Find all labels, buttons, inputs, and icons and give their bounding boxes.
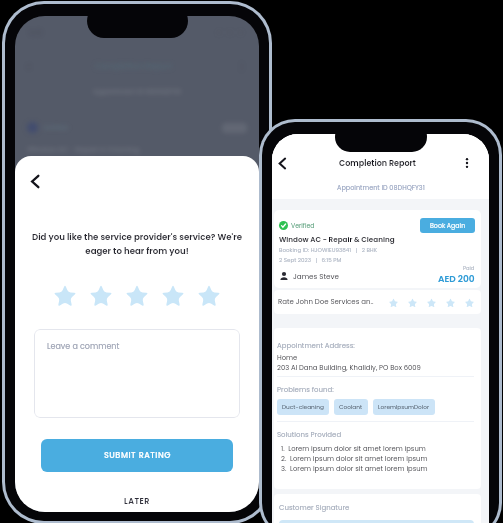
staticText: Appointment Address: — [277, 341, 355, 351]
staticText: 3. Lorem ipsum dolor sit amet lorem ipsu… — [281, 464, 428, 474]
button[interactable]: Rate 4 stars — [155, 278, 191, 314]
staticText: Completion Report — [298, 158, 457, 169]
button[interactable]: Back — [19, 165, 51, 197]
button[interactable]: Leave a comment — [34, 329, 240, 418]
button[interactable]: Back — [272, 153, 292, 173]
button[interactable]: SUBMIT RATING — [41, 439, 233, 472]
staticText: LATER — [124, 496, 150, 507]
button[interactable]: Rate 2 stars — [83, 278, 119, 314]
staticText: Booking ID: HJOWIEU93841 | 2 BHK — [279, 246, 378, 254]
staticText: Customer Signature — [279, 503, 350, 513]
staticText: Book Again — [430, 221, 466, 230]
staticText: SUBMIT RATING — [104, 450, 171, 461]
button[interactable]: Rate 3 stars — [119, 278, 155, 314]
button[interactable]: LATER — [15, 487, 259, 512]
staticText: Verified — [291, 221, 315, 230]
staticText: Window AC - Repair & Cleaning — [279, 234, 395, 244]
staticText: Paid — [463, 265, 475, 272]
staticText: Coolant — [339, 403, 363, 411]
staticText: Home — [277, 353, 298, 363]
button[interactable]: Book Again — [420, 218, 475, 233]
staticText: Appointment ID 08DHQFY31 — [337, 183, 425, 192]
staticText: 2. Lorem ipsum dolor sit amet lorem ipsu… — [281, 454, 428, 464]
staticText: LoremIpsumDolor — [378, 403, 430, 411]
staticText: James Steve — [293, 271, 339, 281]
staticText: Rate John Doe Services an.. — [278, 297, 374, 307]
staticText: 1. Lorem ipsum dolor sit amet lorem ipsu… — [281, 444, 426, 454]
button[interactable]: Rate 5 stars — [191, 278, 227, 314]
button[interactable]: Rate John Doe Services an.. — [274, 290, 481, 314]
staticText: 203 Al Dana Building, Khalidiy, PO Box 6… — [277, 363, 421, 373]
staticText: Duct-cleaning — [282, 403, 324, 411]
staticText: AED 200 — [438, 273, 475, 286]
staticText: Did you like the service provider's serv… — [15, 231, 259, 257]
button[interactable]: Rate 1 stars — [47, 278, 83, 314]
staticText: Leave a comment — [47, 341, 120, 352]
staticText: 2 Sept 2023 | 6:15 PM — [279, 256, 342, 264]
staticText: Problems found: — [277, 385, 334, 395]
button[interactable]: More options — [457, 153, 477, 173]
staticText: Solutions Provided — [277, 430, 342, 440]
